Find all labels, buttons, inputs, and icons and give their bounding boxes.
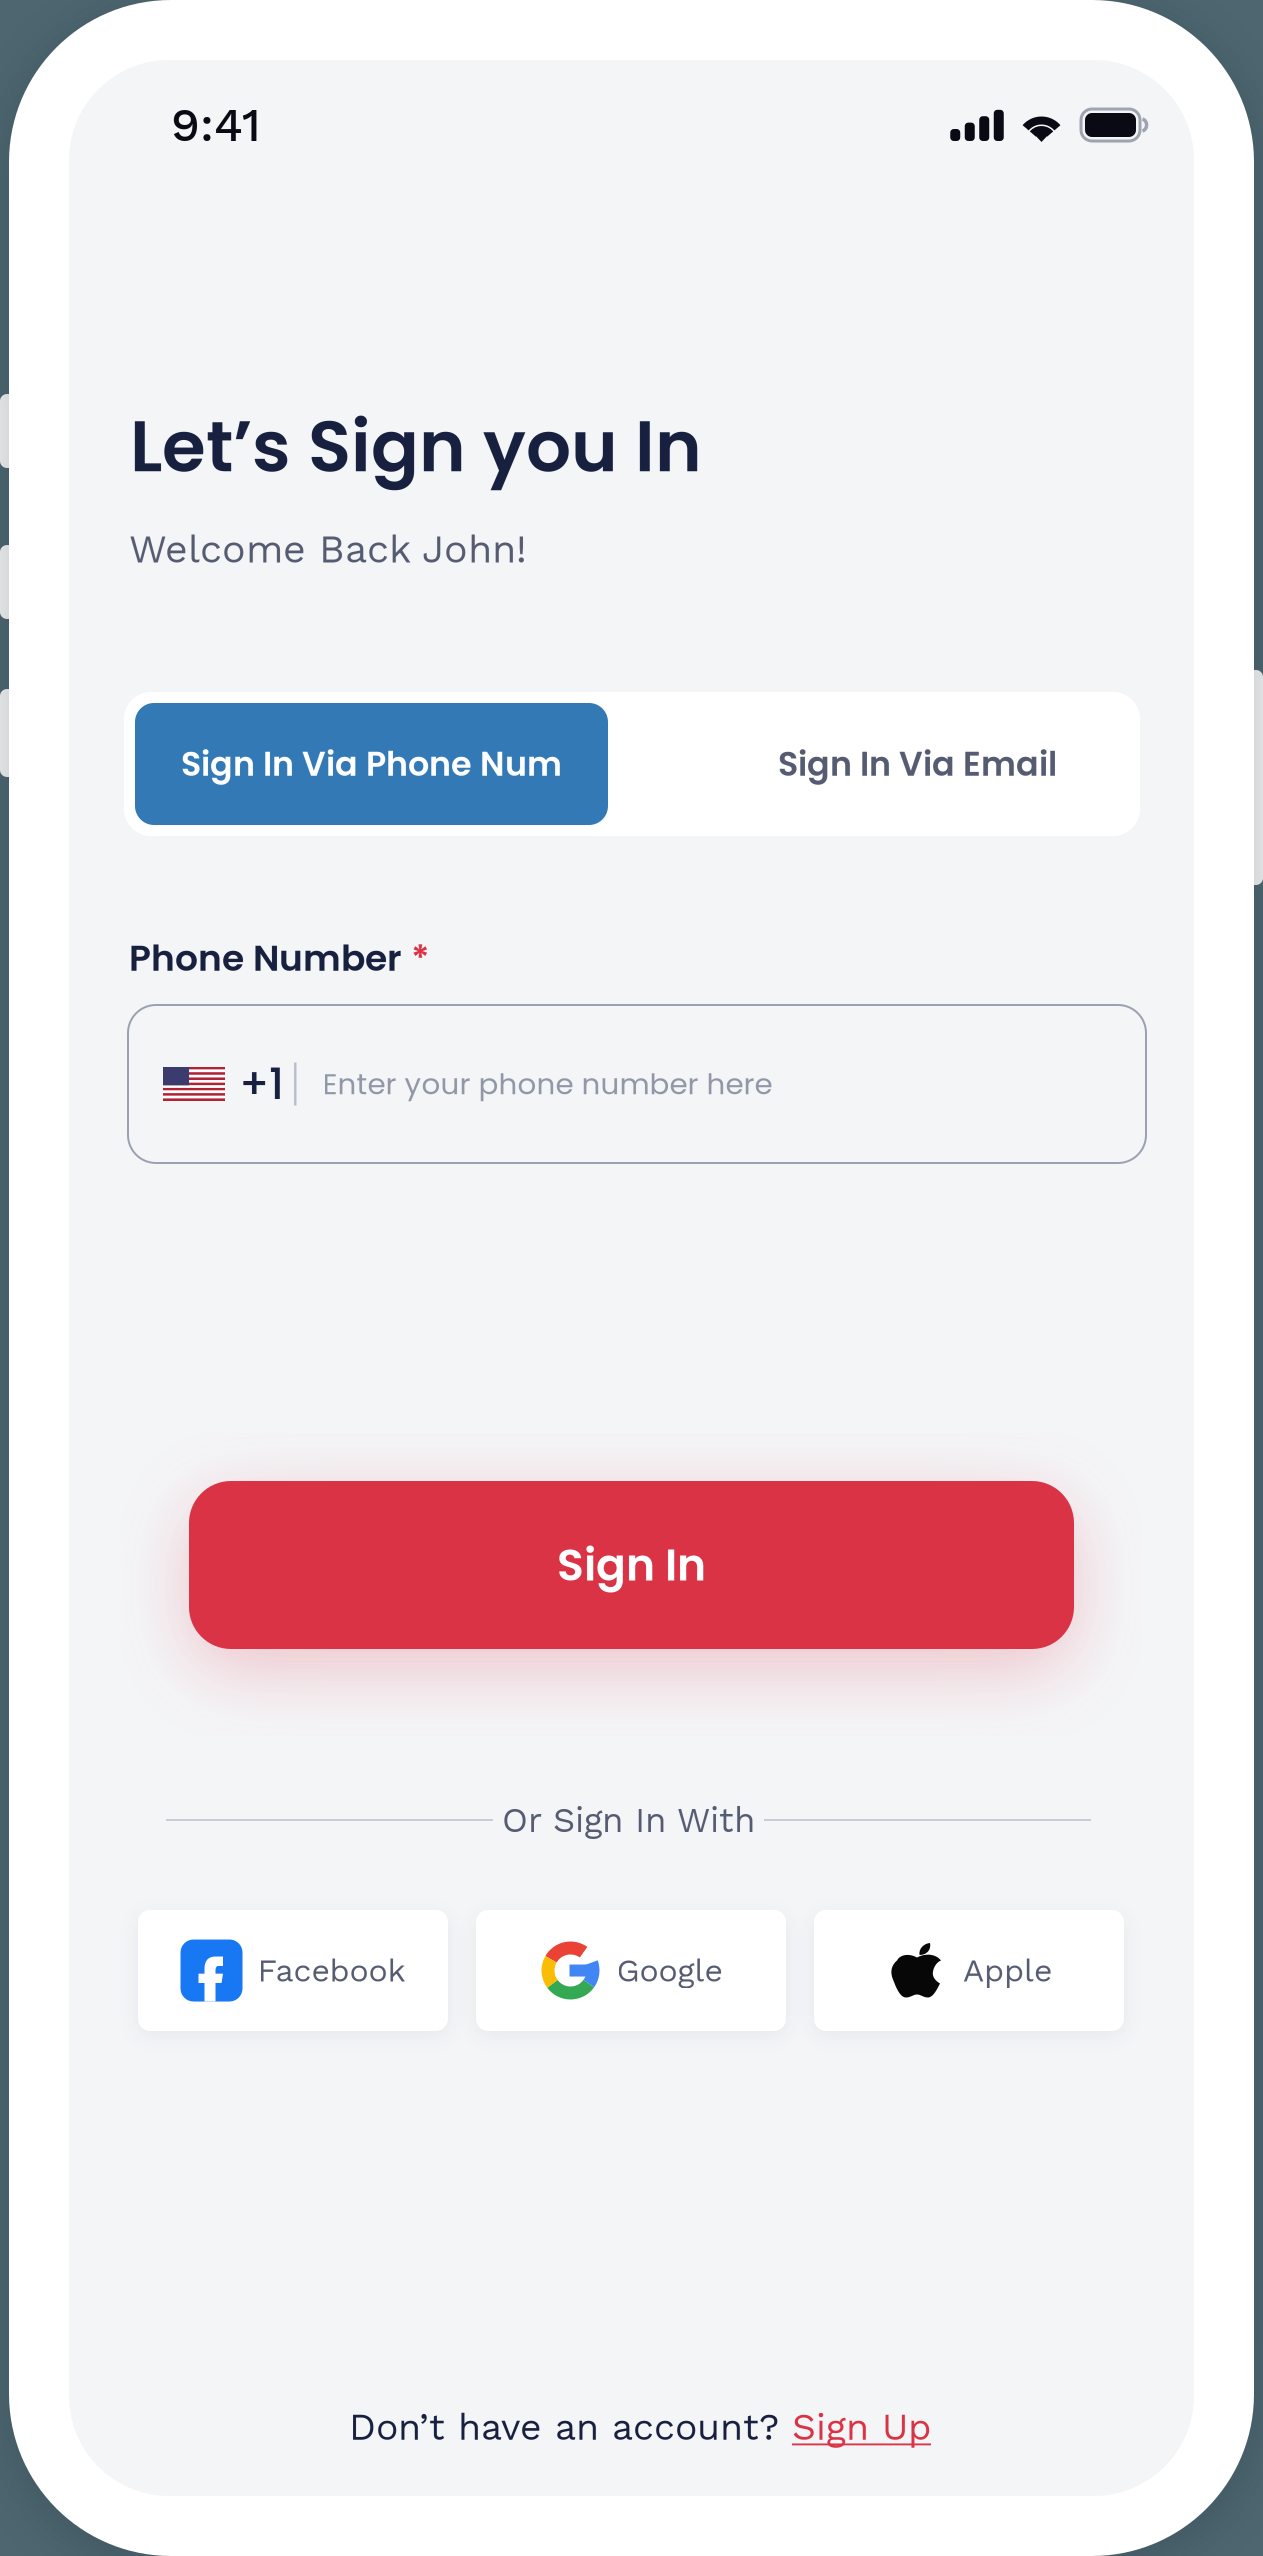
staticText: Sign Up (792, 2405, 931, 2449)
staticText: Or Sign In With (502, 1800, 755, 1840)
staticText: Google (616, 1952, 722, 1989)
staticText: Welcome Back John! (129, 526, 527, 572)
staticText: * (411, 933, 430, 983)
staticText: Facebook (257, 1952, 405, 1989)
button[interactable]: Facebook (138, 1910, 448, 2031)
staticText: Enter your phone number here (322, 1063, 772, 1105)
staticText: Sign In Via Email (778, 741, 1057, 787)
button[interactable]: Sign In Via Email (608, 703, 1129, 825)
button[interactable]: Apple (814, 1910, 1124, 2031)
button[interactable]: Sign In Via Phone Num (135, 703, 608, 825)
staticText: Let’s Sign you In (130, 397, 702, 496)
button[interactable]: Sign Up (792, 2405, 931, 2449)
staticText: Don’t have an account? (349, 2405, 792, 2449)
staticText: Sign In (557, 1534, 706, 1596)
staticText: 9:41 (171, 98, 261, 152)
button[interactable]: Sign In (189, 1481, 1074, 1649)
button[interactable]: Google (476, 1910, 786, 2031)
staticText: Phone Number (129, 933, 411, 983)
staticText: Sign In Via Phone Num (181, 741, 562, 787)
staticText: Apple (963, 1952, 1052, 1989)
staticText: +1 (239, 1054, 284, 1114)
